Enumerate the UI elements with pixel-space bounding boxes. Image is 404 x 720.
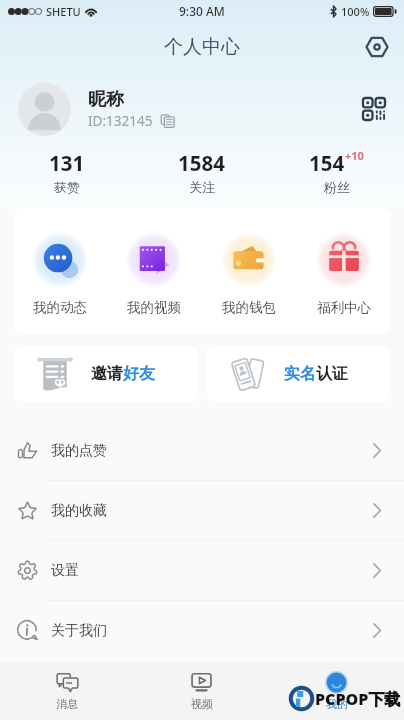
staticText: 邀请 [91, 364, 123, 384]
button[interactable]: 1584 [134, 149, 269, 195]
staticText: 福利中心 [317, 299, 371, 316]
staticText: 获赞 [54, 179, 80, 195]
button[interactable]: 关于我们 [0, 601, 404, 660]
button[interactable]: Settings [361, 31, 393, 63]
button[interactable]: 我的视频 [107, 232, 201, 316]
staticText: PCPOP下载 [315, 688, 401, 710]
staticText: 我的 [326, 697, 348, 711]
staticText: ID:132145 [88, 112, 153, 130]
button[interactable]: 邀请 [13, 346, 198, 402]
staticText: 我的钱包 [222, 299, 276, 316]
staticText: 131 [49, 149, 85, 177]
button[interactable]: 我的钱包 [201, 232, 296, 316]
button[interactable]: 我的 [269, 662, 404, 720]
button[interactable]: 131 [0, 149, 134, 195]
staticText: 关于我们 [51, 622, 107, 640]
staticText: 消息 [56, 697, 78, 711]
staticText: 154 [309, 149, 345, 177]
button[interactable] [18, 83, 71, 136]
button[interactable]: 视频 [134, 662, 269, 720]
button[interactable]: 我的收藏 [0, 481, 404, 540]
staticText: SHETU [46, 4, 81, 19]
button[interactable]: 设置 [0, 541, 404, 600]
staticText: 1584 [178, 149, 225, 177]
staticText: 昵称 [88, 88, 124, 111]
button[interactable]: 我的点赞 [0, 421, 404, 480]
button[interactable]: 154 [269, 149, 404, 195]
staticText: 我的点赞 [51, 442, 107, 460]
staticText: 个人中心 [164, 35, 240, 59]
staticText: +10 [345, 148, 364, 163]
button[interactable]: 我的动态 [13, 232, 107, 316]
button[interactable]: 福利中心 [296, 232, 391, 316]
button[interactable]: Copy ID [161, 114, 175, 128]
staticText: 认证 [316, 364, 348, 384]
staticText: 实名 [284, 364, 316, 384]
staticText: 设置 [51, 562, 79, 580]
staticText: 粉丝 [324, 179, 350, 195]
staticText: 关注 [189, 179, 215, 195]
button[interactable]: QR code [358, 93, 390, 125]
staticText: 我的动态 [33, 299, 87, 316]
button[interactable]: 实名 [206, 346, 391, 402]
staticText: 好友 [123, 364, 155, 384]
staticText: 我的收藏 [51, 502, 107, 520]
staticText: 9:30 AM [179, 3, 225, 19]
button[interactable]: 消息 [0, 662, 134, 720]
staticText: 视频 [191, 697, 213, 711]
staticText: 100% [341, 4, 370, 19]
staticText: 我的视频 [127, 299, 181, 316]
